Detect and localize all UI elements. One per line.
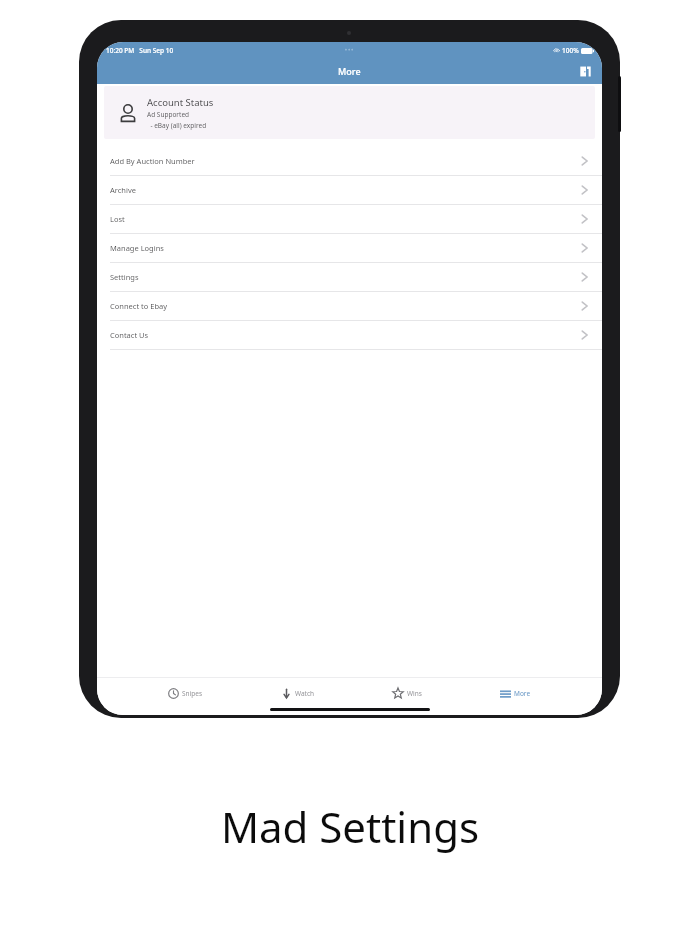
- button[interactable]: Account Status: [104, 86, 595, 139]
- staticText: Wins: [407, 689, 422, 698]
- staticText: Archive: [110, 185, 136, 195]
- button[interactable]: Manage Logins: [97, 234, 602, 263]
- staticText: • • •: [345, 47, 354, 54]
- staticText: 10:20 PM Sun Sep 10: [106, 46, 174, 55]
- staticText: More: [338, 65, 361, 77]
- staticText: More: [514, 689, 531, 698]
- button[interactable]: Add By Auction Number: [97, 147, 602, 176]
- staticText: Snipes: [182, 689, 203, 698]
- button[interactable]: More: [494, 687, 537, 700]
- staticText: Connect to Ebay: [110, 301, 168, 311]
- staticText: Manage Logins: [110, 243, 164, 253]
- staticText: Account Status: [147, 96, 214, 109]
- staticText: Add By Auction Number: [110, 156, 195, 166]
- button[interactable]: Connect to Ebay: [97, 292, 602, 321]
- staticText: Watch: [295, 689, 315, 698]
- button[interactable]: Lost: [97, 205, 602, 234]
- staticText: - eBay (all) expired: [147, 121, 207, 130]
- button[interactable]: Sign out: [576, 62, 594, 80]
- button[interactable]: Wins: [386, 685, 428, 701]
- staticText: Lost: [110, 214, 125, 224]
- button[interactable]: Archive: [97, 176, 602, 205]
- staticText: 100%: [562, 46, 579, 55]
- button[interactable]: Snipes: [162, 686, 209, 701]
- button[interactable]: Watch: [275, 686, 321, 701]
- staticText: Contact Us: [110, 330, 149, 340]
- staticText: Settings: [110, 272, 139, 282]
- staticText: Ad Supported: [147, 110, 190, 119]
- button[interactable]: Settings: [97, 263, 602, 292]
- staticText: Mad Settings: [0, 798, 700, 855]
- button[interactable]: Contact Us: [97, 321, 602, 350]
